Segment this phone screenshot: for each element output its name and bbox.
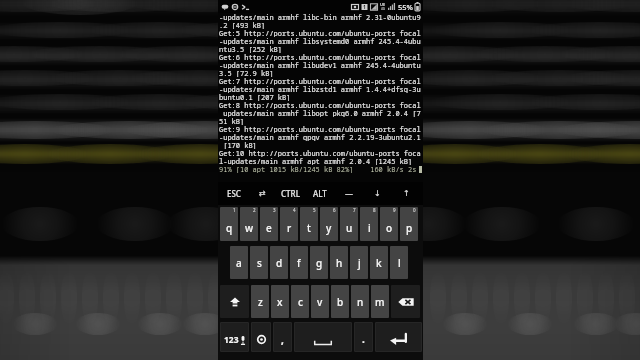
button[interactable]: d xyxy=(270,246,288,279)
staticText: UE xyxy=(380,2,386,7)
button[interactable]: ESC xyxy=(220,182,248,205)
button[interactable]: ⇄ xyxy=(248,182,276,205)
staticText: ↑ xyxy=(403,189,410,198)
button[interactable]: m xyxy=(371,285,389,318)
button[interactable]: s xyxy=(250,246,268,279)
staticText: -updates/main armhf libudev1 armhf 245.4… xyxy=(219,61,421,69)
staticText: y xyxy=(326,221,332,235)
staticText: Get:8 http://ports.ubuntu.com/ubuntu-por… xyxy=(219,101,421,109)
button[interactable]: 6 xyxy=(320,207,338,241)
staticText: b xyxy=(337,295,344,309)
staticText: 0 xyxy=(413,207,416,213)
staticText: x xyxy=(277,295,283,309)
button[interactable]: c xyxy=(291,285,309,318)
button[interactable]: k xyxy=(370,246,388,279)
staticText: 8 xyxy=(373,207,376,213)
button[interactable]: j xyxy=(350,246,368,279)
button[interactable]: f xyxy=(290,246,308,279)
other: Battery xyxy=(415,2,420,11)
staticText: Get:10 http://ports.ubuntu.com/ubuntu-po… xyxy=(219,149,421,157)
staticText: f xyxy=(297,256,301,270)
button[interactable]: ↓ xyxy=(363,182,392,205)
staticText: 1 xyxy=(233,207,236,213)
staticText: -updates/main armhf libzstd1 armhf 1.4.4… xyxy=(219,85,421,93)
staticText: q xyxy=(226,221,233,235)
staticText: j xyxy=(358,256,361,270)
button[interactable]: h xyxy=(330,246,348,279)
staticText: v xyxy=(317,295,323,309)
button[interactable]: n xyxy=(351,285,369,318)
other: Notification xyxy=(231,3,239,11)
button[interactable]: . xyxy=(354,322,373,352)
staticText: ESC xyxy=(227,188,241,199)
button[interactable]: a xyxy=(230,246,248,279)
button[interactable]: , xyxy=(273,322,292,352)
button[interactable]: l xyxy=(390,246,408,279)
staticText: l xyxy=(398,256,401,270)
staticText: g xyxy=(316,256,323,270)
staticText: ↓ xyxy=(374,189,381,198)
staticText: c xyxy=(298,295,303,309)
staticText: ntu3.5 [252 kB] xyxy=(219,45,282,53)
button[interactable]: 8 xyxy=(360,207,378,241)
button[interactable]: ↑ xyxy=(392,182,421,205)
staticText: m xyxy=(375,295,385,309)
staticText: 6 xyxy=(333,207,336,213)
button[interactable]: Settings xyxy=(251,322,271,352)
staticText: — xyxy=(345,188,353,199)
staticText: CTRL xyxy=(281,188,300,199)
button[interactable]: x xyxy=(271,285,289,318)
staticText: . xyxy=(362,332,365,346)
staticText: -updates/main armhf libc-bin armhf 2.31-… xyxy=(219,13,421,21)
staticText: 1 xyxy=(363,4,366,11)
staticText: Get:7 http://ports.ubuntu.com/ubuntu-por… xyxy=(219,77,421,85)
button[interactable]: b xyxy=(331,285,349,318)
button[interactable]: 9 xyxy=(380,207,398,241)
button[interactable]: v xyxy=(311,285,329,318)
staticText: 55% xyxy=(398,2,413,12)
staticText: n xyxy=(357,295,364,309)
staticText: Get:9 http://ports.ubuntu.com/ubuntu-por… xyxy=(219,125,421,133)
button[interactable]: ALT xyxy=(305,182,334,205)
button[interactable]: — xyxy=(334,182,363,205)
staticText: updates/main armhf libopt pkg6.0 armhf 2… xyxy=(219,109,421,117)
staticText: [170 kB] xyxy=(219,141,257,149)
staticText: Get:6 http://ports.ubuntu.com/ubuntu-por… xyxy=(219,53,421,61)
button[interactable]: Backspace xyxy=(391,285,420,318)
staticText: w xyxy=(245,221,254,235)
staticText: t xyxy=(307,221,311,235)
button[interactable]: 4 xyxy=(280,207,298,241)
button[interactable]: Space xyxy=(294,322,352,352)
button[interactable]: 0 xyxy=(400,207,418,241)
staticText: z xyxy=(258,295,263,309)
button[interactable]: 3 xyxy=(260,207,278,241)
staticText: ⇄ xyxy=(259,189,266,198)
staticText: .2 [493 kB] xyxy=(219,21,266,29)
staticText: a xyxy=(236,256,242,270)
button[interactable]: 5 xyxy=(300,207,318,241)
staticText: -updates/main armhf gpgv armhf 2.2.19-3u… xyxy=(219,133,421,141)
button[interactable]: 1 xyxy=(220,207,238,241)
staticText: Get:5 http://ports.ubuntu.com/ubuntu-por… xyxy=(219,29,421,37)
staticText: e xyxy=(266,221,272,235)
button[interactable]: Shift xyxy=(220,285,249,318)
staticText: k xyxy=(376,256,382,270)
other: Network xyxy=(370,3,378,11)
staticText: s xyxy=(257,256,262,270)
staticText: p xyxy=(406,221,413,235)
other: Signal xyxy=(388,3,396,11)
button[interactable]: Symbols and voice input xyxy=(220,322,249,352)
staticText: 2 xyxy=(253,207,256,213)
other: Cast xyxy=(351,3,359,11)
button[interactable]: g xyxy=(310,246,328,279)
button[interactable]: Enter xyxy=(375,322,422,352)
staticText: u xyxy=(346,221,353,235)
button[interactable]: z xyxy=(251,285,269,318)
staticText: 123 xyxy=(224,334,239,346)
button[interactable]: 7 xyxy=(340,207,358,241)
button[interactable]: CTRL xyxy=(276,182,305,205)
button[interactable]: 2 xyxy=(240,207,258,241)
staticText: 4 xyxy=(293,207,296,213)
staticText: r xyxy=(287,221,292,235)
staticText: i xyxy=(368,221,371,235)
